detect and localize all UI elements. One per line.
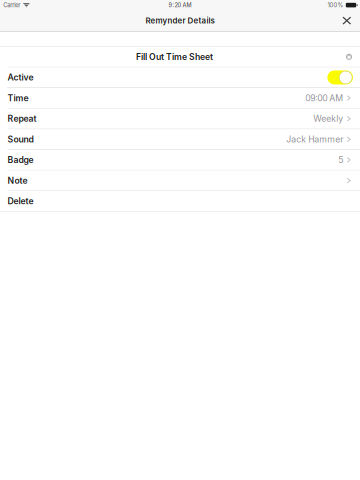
- button[interactable]: Sound: [0, 129, 360, 149]
- staticText: 5: [338, 155, 343, 165]
- staticText: 09:00 AM: [305, 93, 343, 103]
- staticText: Weekly: [313, 113, 343, 124]
- staticText: Delete: [7, 196, 33, 206]
- staticText: Remynder Details: [145, 16, 214, 25]
- button[interactable]: Note: [0, 170, 360, 190]
- staticText: 100%: [328, 2, 344, 9]
- staticText: Badge: [7, 155, 33, 165]
- staticText: Sound: [7, 134, 33, 145]
- button[interactable]: Clear: [343, 51, 355, 63]
- button[interactable]: Repeat: [0, 109, 360, 129]
- button[interactable]: Active: [0, 67, 360, 87]
- staticText: Carrier: [3, 2, 20, 9]
- button[interactable]: Close: [338, 12, 356, 30]
- staticText: Fill Out Time Sheet: [136, 52, 213, 62]
- staticText: 9:20 AM: [168, 2, 191, 8]
- staticText: Jack Hammer: [286, 134, 343, 145]
- staticText: Repeat: [7, 113, 36, 124]
- staticText: Time: [7, 93, 28, 103]
- button[interactable]: Time: [0, 88, 360, 108]
- staticText: Note: [7, 175, 27, 186]
- button[interactable]: Delete: [0, 191, 360, 211]
- button[interactable]: Badge: [0, 150, 360, 170]
- staticText: Active: [7, 72, 33, 83]
